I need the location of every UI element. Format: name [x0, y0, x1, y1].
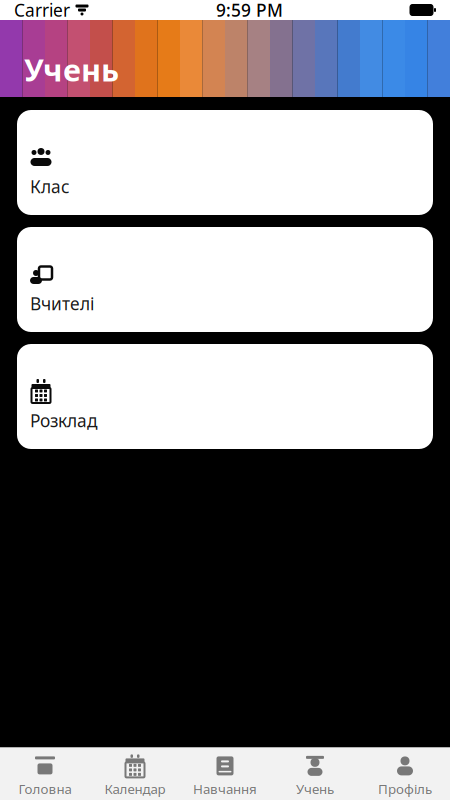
staticText: Клас — [30, 175, 70, 198]
button[interactable]: Навчання — [180, 752, 270, 800]
staticText: Профіль — [378, 780, 432, 798]
button[interactable]: Розклад — [17, 344, 433, 449]
staticText: Календар — [104, 780, 165, 798]
staticText: Навчання — [193, 780, 257, 798]
staticText: Вчителі — [30, 292, 94, 315]
staticText: Головна — [18, 780, 71, 798]
button[interactable]: Календар — [90, 752, 180, 800]
button[interactable]: Клас — [17, 110, 433, 215]
button[interactable]: Учень — [270, 752, 360, 800]
button[interactable]: Профіль — [360, 752, 450, 800]
staticText: Carrier — [14, 0, 70, 21]
staticText: 9:59 PM — [216, 0, 283, 21]
staticText: Розклад — [30, 409, 98, 432]
staticText: Учень — [296, 780, 334, 798]
button[interactable]: Головна — [0, 752, 90, 800]
staticText: Учень — [24, 49, 119, 90]
button[interactable]: Вчителі — [17, 227, 433, 332]
